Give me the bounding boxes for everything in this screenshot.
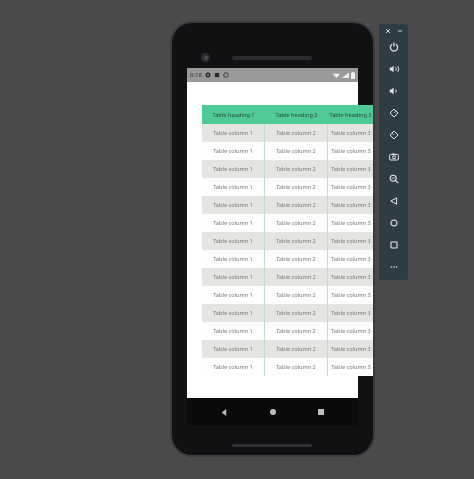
staticText: Table column 3 [331,309,371,317]
button[interactable]: Back [379,190,408,212]
staticText: Table column 3 [331,273,371,281]
button[interactable]: Zoom [379,168,408,190]
staticText: Table column 1 [213,147,253,155]
staticText: Table column 2 [276,255,316,263]
button[interactable]: Volume up [379,58,408,80]
staticText: Table column 3 [331,165,371,173]
staticText: Table column 2 [276,273,316,281]
staticText: Table column 3 [331,327,371,335]
button[interactable]: Table column 1 [202,178,373,196]
staticText: Table column 1 [213,345,253,353]
staticText: Table column 3 [331,291,371,299]
staticText: Table column 2 [276,291,316,299]
button[interactable]: Home [379,212,408,234]
staticText: Table column 3 [331,147,371,155]
staticText: Table column 2 [276,165,316,173]
staticText: Table column 2 [276,363,316,371]
staticText: Table column 2 [276,201,316,209]
staticText: Table column 3 [331,237,371,245]
staticText: Table column 1 [213,363,253,371]
button[interactable]: Table column 1 [202,358,373,376]
staticText: Table column 1 [213,255,253,263]
staticText: Table column 3 [331,183,371,191]
button[interactable]: Minimize [395,26,404,35]
staticText: Table column 3 [331,345,371,353]
staticText: Table column 2 [276,237,316,245]
button[interactable]: Table column 1 [202,304,373,322]
staticText: Table column 1 [213,183,253,191]
staticText: Table column 3 [331,363,371,371]
button[interactable]: Table column 1 [202,322,373,340]
staticText: Table column 1 [213,327,253,335]
staticText: Table column 3 [331,219,371,227]
staticText: Table heading 2 [275,111,318,119]
button[interactable]: Recent apps [309,400,333,424]
button[interactable]: Table column 1 [202,196,373,214]
button[interactable]: Take screenshot [379,146,408,168]
button[interactable]: More [379,256,408,278]
button[interactable]: Table column 1 [202,340,373,358]
staticText: Table column 1 [213,237,253,245]
staticText: Table column 2 [276,309,316,317]
staticText: Table column 3 [331,255,371,263]
staticText: Table column 2 [276,147,316,155]
staticText: Table column 3 [331,129,371,137]
button[interactable]: Table column 1 [202,232,373,250]
button[interactable]: Table column 1 [202,142,373,160]
staticText: Table column 1 [213,201,253,209]
staticText: Table column 1 [213,219,253,227]
button[interactable]: Rotate right [379,124,408,146]
staticText: 8:18 [190,71,202,79]
button[interactable]: Home [261,400,285,424]
button[interactable]: Table column 1 [202,124,373,142]
staticText: Table column 3 [331,201,371,209]
staticText: Table column 1 [213,291,253,299]
staticText: Table column 2 [276,327,316,335]
button[interactable]: Table column 1 [202,268,373,286]
button[interactable]: Rotate left [379,102,408,124]
button[interactable]: Table column 1 [202,286,373,304]
button[interactable]: Back [212,400,236,424]
button[interactable]: Table heading 1 [202,105,373,124]
button[interactable]: Table column 1 [202,160,373,178]
button[interactable]: Overview [379,234,408,256]
staticText: Table column 2 [276,345,316,353]
button[interactable]: Close [383,26,392,35]
staticText: Table column 1 [213,165,253,173]
staticText: Table column 2 [276,183,316,191]
staticText: Table column 1 [213,273,253,281]
staticText: Table column 1 [213,309,253,317]
staticText: Table column 1 [213,129,253,137]
staticText: Table column 2 [276,219,316,227]
button[interactable]: Table column 1 [202,250,373,268]
staticText: Table heading 1 [212,111,255,119]
staticText: Table heading 3 [329,111,372,119]
button[interactable]: Volume down [379,80,408,102]
button[interactable]: Table column 1 [202,214,373,232]
staticText: Table column 2 [276,129,316,137]
button[interactable]: Power [379,36,408,58]
